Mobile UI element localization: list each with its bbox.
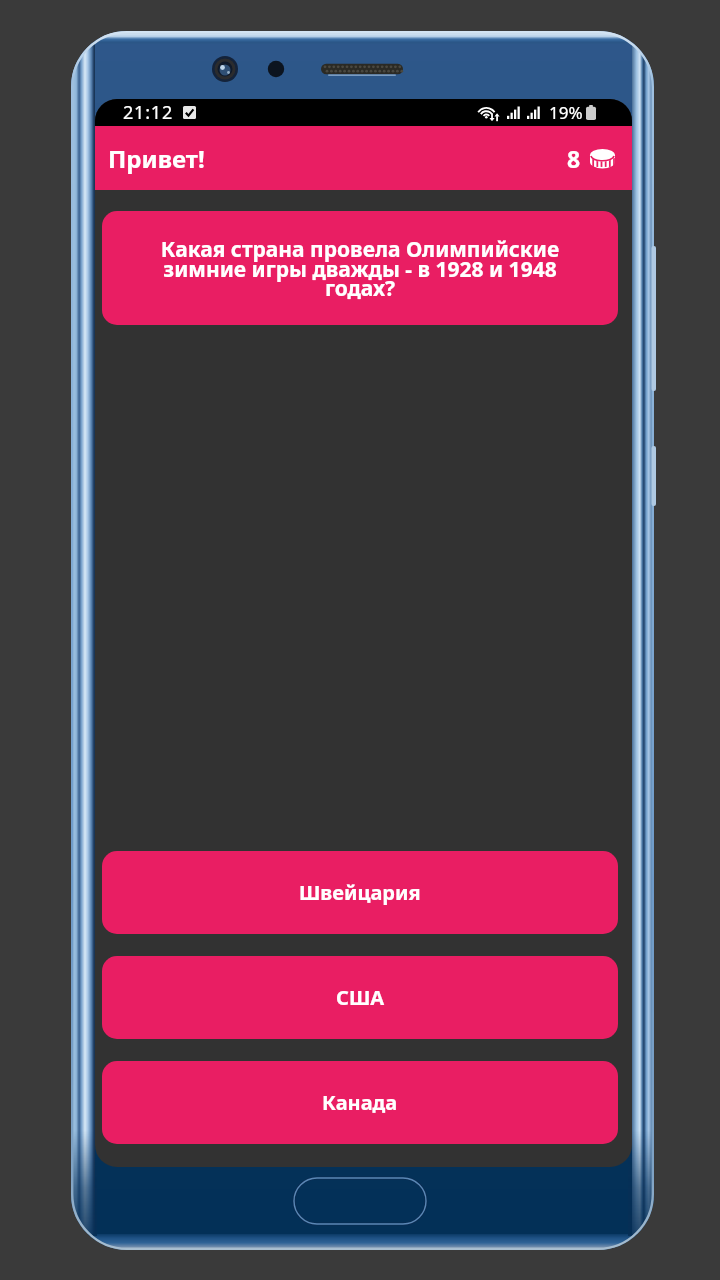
staticText: 21:12: [123, 100, 174, 125]
staticText: Канада: [322, 1089, 398, 1116]
staticText: Швейцария: [299, 879, 421, 906]
staticText: 19%: [549, 101, 583, 124]
button[interactable]: США: [102, 956, 618, 1039]
staticText: 8: [567, 143, 581, 174]
button[interactable]: 8 coins: [563, 137, 619, 180]
button[interactable]: Швейцария: [102, 851, 618, 934]
staticText: Какая страна провела Олимпийские зимние …: [153, 235, 567, 302]
button[interactable]: Канада: [102, 1061, 618, 1144]
staticText: США: [336, 984, 385, 1011]
staticText: Привет!: [108, 142, 205, 175]
